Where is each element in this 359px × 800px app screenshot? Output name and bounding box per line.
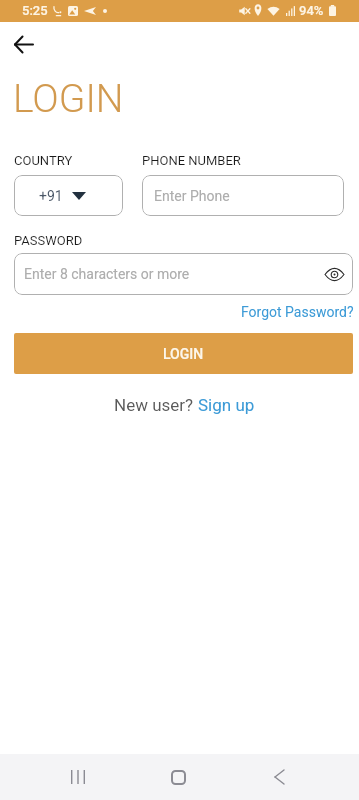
staticText: 94% — [299, 3, 324, 18]
button[interactable]: Recent apps — [54, 754, 102, 800]
staticText: +91 — [39, 188, 63, 204]
button[interactable]: Sign up — [198, 389, 255, 421]
button[interactable]: Back — [9, 30, 37, 58]
button[interactable]: Show password — [321, 261, 347, 287]
staticText: Enter 8 characters or more — [24, 266, 190, 282]
button[interactable]: Forgot Password? — [235, 298, 359, 326]
button[interactable]: +91 — [14, 175, 123, 216]
button[interactable]: Enter Phone — [142, 175, 344, 216]
staticText: Forgot Password? — [241, 304, 354, 320]
staticText: COUNTRY — [14, 153, 73, 168]
staticText: LOGIN — [163, 346, 204, 362]
button[interactable]: Home — [154, 754, 202, 800]
button[interactable]: Back — [255, 754, 303, 800]
button[interactable]: Enter 8 characters or more — [14, 253, 353, 295]
staticText: Sign up — [198, 395, 255, 415]
staticText: PASSWORD — [14, 233, 83, 248]
staticText: LOGIN — [13, 76, 124, 122]
staticText: 5:25 — [22, 3, 48, 18]
staticText: Enter Phone — [154, 188, 230, 204]
staticText: New user? — [114, 395, 198, 415]
button[interactable]: LOGIN — [14, 333, 353, 374]
staticText: PHONE NUMBER — [142, 153, 241, 168]
